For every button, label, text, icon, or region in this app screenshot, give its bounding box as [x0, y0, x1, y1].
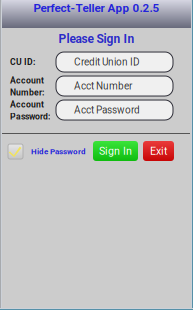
staticText: CU ID: [10, 57, 35, 67]
button[interactable]: Sign In [93, 141, 138, 161]
staticText: Credit Union ID [74, 56, 140, 68]
staticText: Account [10, 75, 44, 85]
staticText: Sign In [99, 145, 132, 157]
button[interactable]: Exit [143, 141, 174, 161]
button[interactable]: Acct Password [56, 100, 173, 120]
staticText: Password: [10, 111, 50, 122]
staticText: Exit [150, 145, 167, 157]
button[interactable]: Acct Number [56, 76, 173, 96]
staticText: Account [10, 99, 44, 109]
staticText: Number: [10, 87, 44, 98]
staticText: Acct Number [74, 80, 132, 92]
button[interactable]: Credit Union ID [56, 52, 173, 72]
staticText: Please Sign In [58, 32, 134, 46]
staticText: Acct Password [74, 104, 140, 116]
staticText: Perfect-Teller App 0.2.5 [33, 1, 159, 15]
button[interactable]: Hide Password [8, 144, 86, 159]
staticText: Hide Password [31, 147, 86, 156]
